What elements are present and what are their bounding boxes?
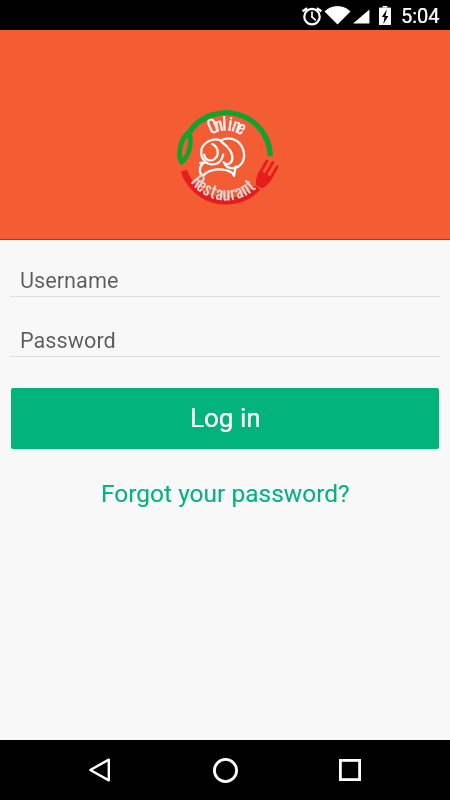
staticText: Username (20, 268, 119, 293)
staticText: Forgot your password? (101, 479, 350, 508)
button[interactable]: Back (78, 748, 122, 792)
staticText: Log in (190, 403, 261, 433)
button[interactable]: Recent apps (328, 748, 372, 792)
button[interactable]: Forgot your password? (0, 477, 450, 509)
button[interactable]: Log in (11, 388, 439, 449)
staticText: Password (20, 328, 116, 353)
button[interactable]: Home (203, 748, 247, 792)
staticText: 5:04 (401, 4, 440, 27)
